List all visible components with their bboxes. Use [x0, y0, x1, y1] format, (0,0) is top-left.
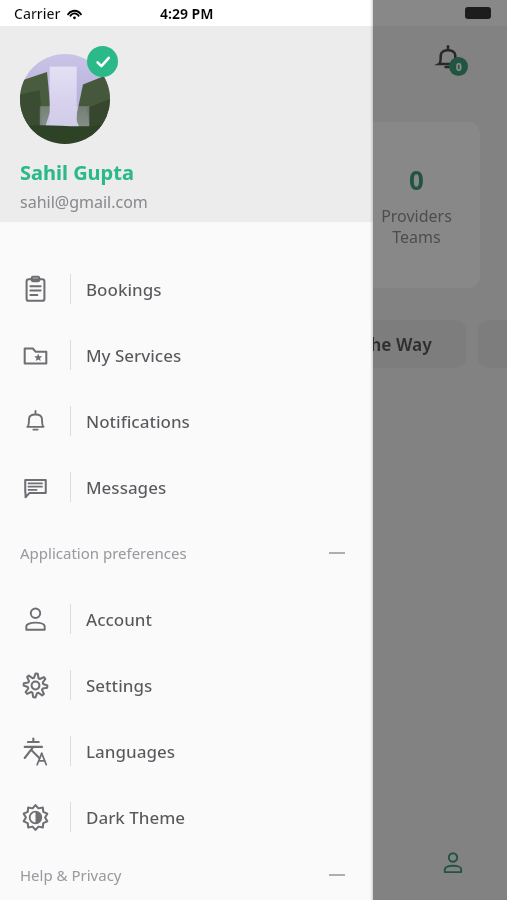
staticText: Sahil Gupta	[20, 159, 134, 186]
staticText: Settings	[86, 674, 153, 697]
staticText: On the Way	[334, 333, 432, 356]
button[interactable]: Profile photo	[20, 54, 110, 144]
button[interactable]: Notifications	[430, 40, 476, 86]
staticText: Help & Privacy	[20, 865, 122, 885]
button[interactable]: Notifications	[0, 388, 373, 454]
staticText: 4:29 PM	[160, 4, 214, 23]
staticText: Notifications	[86, 410, 190, 433]
button[interactable]: Account	[0, 586, 373, 652]
staticText: Languages	[86, 740, 175, 763]
staticText: My Services	[86, 344, 182, 367]
staticText: 0	[409, 162, 424, 197]
staticText: Messages	[86, 476, 167, 499]
staticText: Application preferences	[20, 543, 187, 563]
button[interactable]: On the Way	[300, 320, 466, 368]
button[interactable]: 0	[352, 122, 480, 288]
button[interactable]: Bookings	[0, 256, 373, 322]
staticText: sahil@gmail.com	[20, 191, 148, 213]
button[interactable]: Application preferences	[20, 520, 345, 586]
button[interactable]: Dark Theme	[0, 784, 373, 850]
staticText: Bookings	[86, 278, 162, 301]
staticText: Dark Theme	[86, 806, 186, 829]
button[interactable]: Help & Privacy	[20, 850, 345, 900]
staticText: Carrier	[14, 4, 61, 23]
button[interactable]: Messages	[0, 454, 373, 520]
staticText: Providers Teams	[381, 205, 452, 248]
button[interactable]: Profile	[432, 842, 474, 884]
staticText: 0	[456, 60, 462, 74]
staticText: Account	[86, 608, 153, 631]
button[interactable]: My Services	[0, 322, 373, 388]
button[interactable]: Settings	[0, 652, 373, 718]
button[interactable]: Languages	[0, 718, 373, 784]
